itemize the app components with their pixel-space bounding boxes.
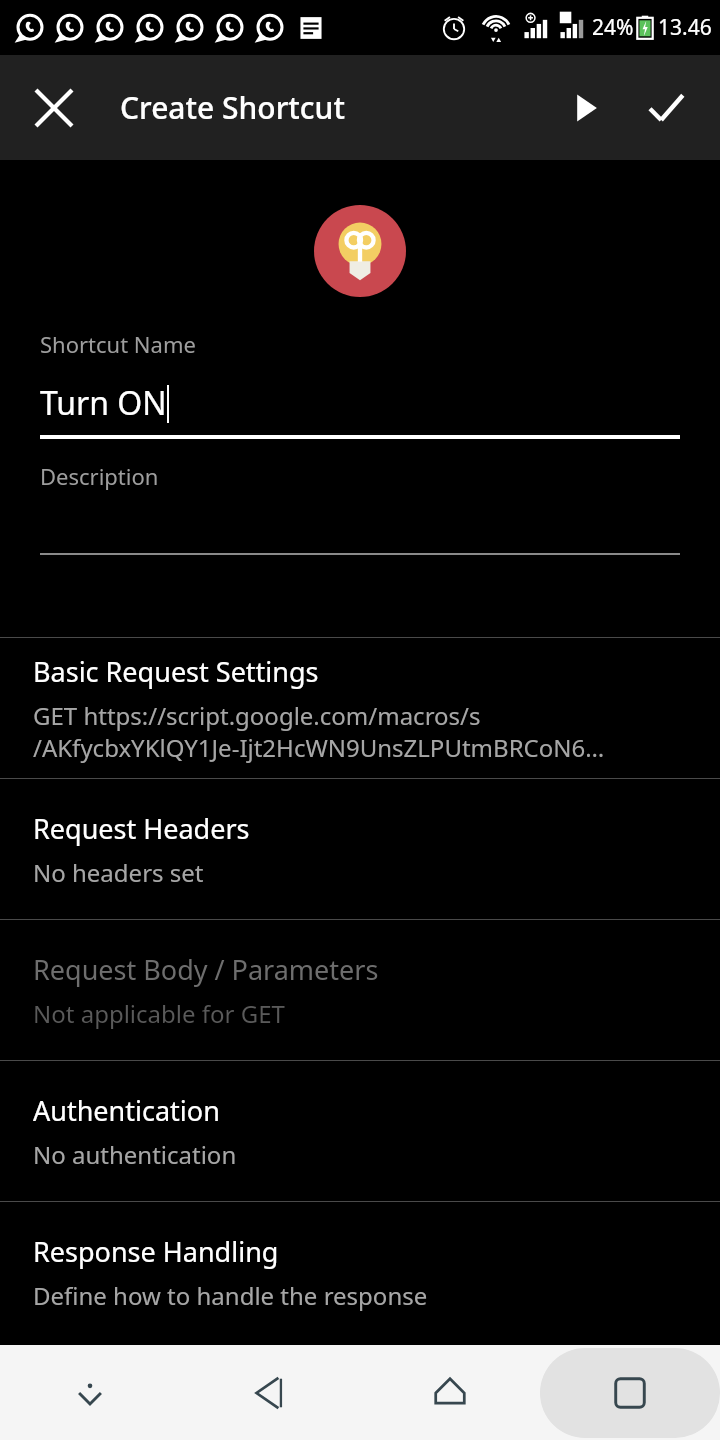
button[interactable]: Authentication	[0, 1061, 720, 1201]
button[interactable]: Response Handling	[0, 1202, 720, 1342]
button[interactable]: Recents	[540, 1348, 720, 1438]
staticText: Create Shortcut	[120, 87, 345, 128]
staticText: 24%	[592, 13, 634, 42]
staticText: Response Handling	[33, 1233, 279, 1270]
staticText: No headers set	[33, 856, 204, 889]
button[interactable]: Test run	[546, 68, 626, 148]
staticText: 13.46	[658, 13, 712, 42]
staticText: Basic Request Settings	[33, 653, 319, 690]
staticText: GET https://script.google.com/macros/s /…	[33, 699, 605, 764]
button[interactable]: Save	[626, 68, 706, 148]
staticText: Turn ON	[40, 381, 167, 425]
staticText: Request Headers	[33, 810, 250, 847]
staticText: Shortcut Name	[40, 329, 196, 359]
staticText: Authentication	[33, 1092, 220, 1129]
button[interactable]: Request Headers	[0, 779, 720, 919]
button[interactable]: Request Body / Parameters	[0, 920, 720, 1060]
button[interactable]: Basic Request Settings	[0, 638, 720, 778]
button[interactable]: Back	[180, 1345, 360, 1440]
button[interactable]: Close	[14, 68, 94, 148]
staticText: Description	[40, 461, 159, 491]
staticText: Not applicable for GET	[33, 997, 285, 1030]
staticText: Define how to handle the response	[33, 1279, 428, 1312]
button[interactable]: Shortcut icon	[314, 205, 406, 297]
button[interactable]: Hide keyboard	[0, 1345, 180, 1440]
staticText: Request Body / Parameters	[33, 951, 379, 988]
staticText: No authentication	[33, 1138, 237, 1171]
button[interactable]: Home	[360, 1345, 540, 1440]
